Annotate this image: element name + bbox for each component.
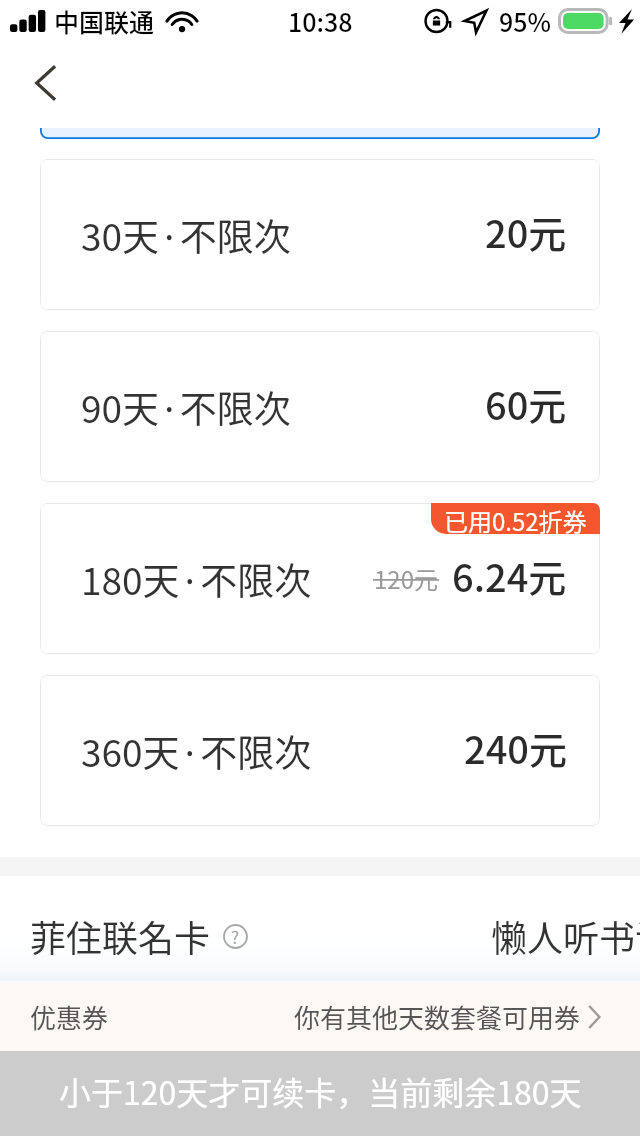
staticText: 10:38 — [288, 3, 353, 39]
staticText: 懒人听书订阅 — [491, 910, 640, 962]
staticText: 6.24元 — [452, 548, 567, 603]
button[interactable]: 菲住联名卡 — [30, 910, 248, 962]
staticText: 90天·不限次 — [81, 380, 291, 434]
button[interactable]: 360天·不限次 — [40, 675, 600, 826]
button[interactable]: Back — [8, 52, 70, 114]
staticText: 240元 — [464, 720, 567, 775]
staticText: 360天·不限次 — [81, 724, 312, 778]
staticText: 菲住联名卡 — [30, 910, 211, 962]
button[interactable] — [40, 128, 600, 139]
staticText: 30天·不限次 — [81, 208, 291, 262]
staticText: 180天·不限次 — [81, 552, 312, 606]
staticText: 20元 — [485, 204, 567, 259]
staticText: 中国联通 — [54, 3, 155, 39]
staticText: 优惠券 — [30, 998, 109, 1036]
staticText: ? — [231, 924, 240, 949]
button[interactable]: 已用0.52折券 — [431, 503, 600, 534]
button[interactable]: 优惠券 — [0, 983, 640, 1051]
button[interactable]: 90天·不限次 — [40, 331, 600, 482]
button[interactable]: 30天·不限次 — [40, 159, 600, 310]
button[interactable]: 180天·不限次 — [40, 503, 600, 654]
staticText: 小于120天才可续卡，当前剩余180天 — [59, 1068, 582, 1114]
button[interactable]: 懒人听书订阅 — [491, 910, 640, 962]
staticText: 60元 — [485, 376, 567, 431]
staticText: 你有其他天数套餐可用券 — [294, 998, 581, 1036]
staticText: 95% — [499, 3, 551, 39]
staticText: 已用0.52折券 — [444, 503, 587, 534]
staticText: 120元 — [374, 561, 438, 596]
